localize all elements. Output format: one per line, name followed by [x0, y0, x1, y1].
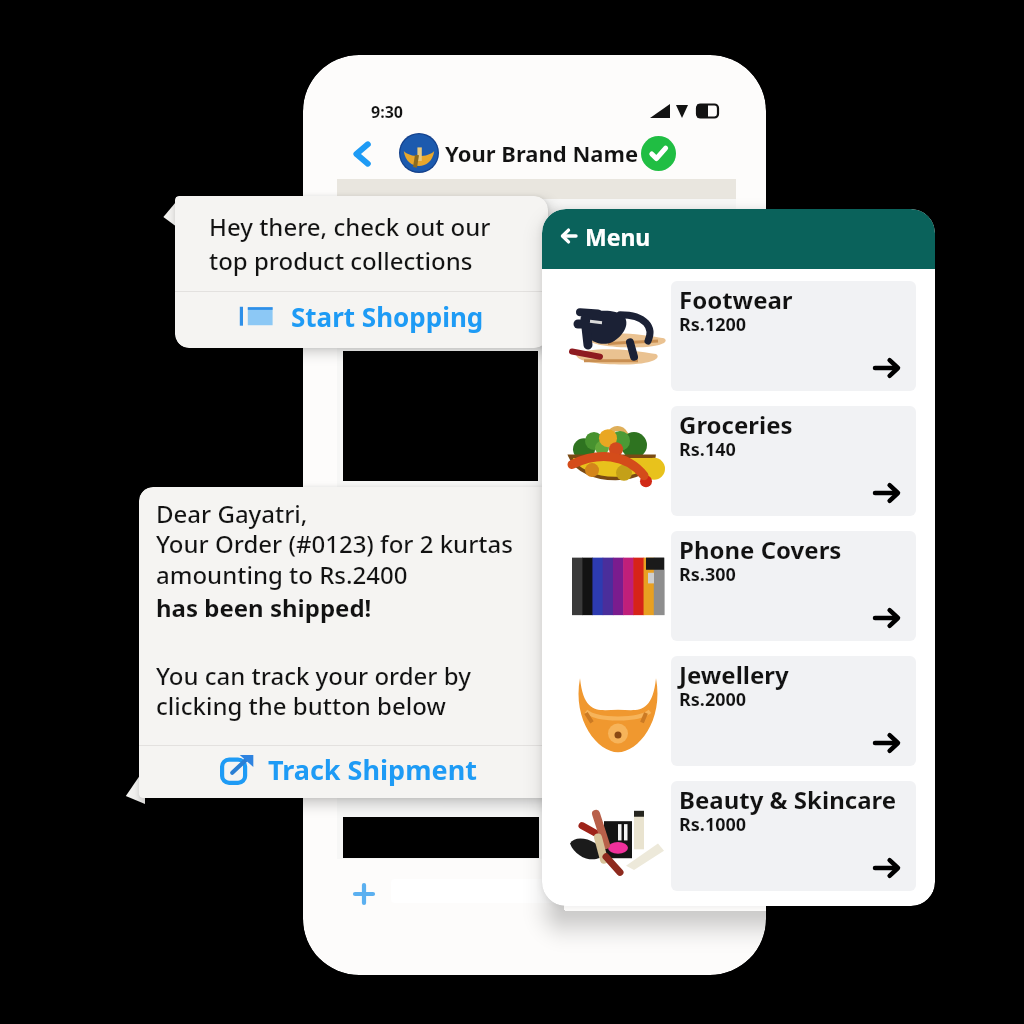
staticText: Start Shopping	[291, 299, 484, 334]
button[interactable]: Brand profile photo	[399, 133, 439, 173]
staticText: Track Shipment	[268, 751, 477, 788]
button[interactable]: Back	[556, 225, 580, 247]
button[interactable]: Jewellery	[542, 656, 935, 774]
staticText: Rs.2000	[679, 687, 747, 712]
staticText: You can track your order by clicking the…	[156, 659, 471, 722]
staticText: has been shipped!	[156, 591, 372, 624]
staticText: Jewellery	[679, 658, 789, 691]
button[interactable]: Phone Covers	[542, 531, 935, 649]
button[interactable]: Start Shopping	[175, 288, 548, 344]
button[interactable]	[391, 879, 736, 903]
staticText: Hey there, check out our top product col…	[209, 210, 491, 277]
other: Open Jewellery	[872, 728, 902, 758]
button[interactable]: Groceries	[542, 406, 935, 524]
staticText: Rs.140	[679, 437, 736, 462]
other: Open Phone Covers	[872, 603, 902, 633]
staticText: Groceries	[679, 408, 793, 441]
button[interactable]: Beauty & Skincare	[542, 781, 935, 899]
staticText: Rs.1000	[679, 812, 747, 837]
staticText: 9:30	[371, 101, 403, 123]
button[interactable]: Attach	[347, 877, 380, 910]
staticText: Menu	[585, 221, 651, 252]
staticText: Beauty & Skincare	[679, 783, 897, 816]
staticText: Rs.300	[679, 562, 736, 587]
staticText: Dear Gayatri, Your Order (#0123) for 2 k…	[156, 497, 513, 591]
button[interactable]: Footwear	[542, 281, 935, 399]
staticText: Your Brand Name	[445, 138, 639, 168]
button[interactable]: Back	[347, 138, 375, 170]
button[interactable]: Verified	[641, 136, 676, 171]
other: Open Beauty & Skincare	[872, 853, 902, 883]
staticText: Phone Covers	[679, 533, 842, 566]
staticText: Rs.1200	[679, 312, 747, 337]
button[interactable]: Track Shipment	[139, 743, 558, 795]
other: Open Footwear	[872, 353, 902, 383]
staticText: Footwear	[679, 283, 793, 316]
other: Open Groceries	[872, 478, 902, 508]
